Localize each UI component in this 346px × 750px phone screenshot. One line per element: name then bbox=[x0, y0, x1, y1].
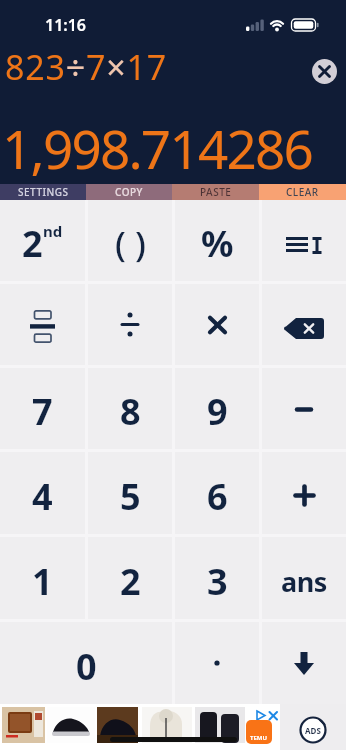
button[interactable]: ( ) bbox=[88, 200, 172, 281]
button[interactable] bbox=[262, 368, 346, 449]
staticText: 8 bbox=[120, 387, 141, 436]
button[interactable] bbox=[262, 622, 346, 704]
button[interactable]: 3 bbox=[175, 537, 259, 619]
button[interactable]: 4 bbox=[0, 452, 85, 534]
button[interactable]: PASTE bbox=[172, 184, 259, 200]
button[interactable] bbox=[262, 284, 346, 365]
button[interactable]: 9 bbox=[175, 368, 259, 449]
button[interactable]: 6 bbox=[175, 452, 259, 534]
staticText: PASTE bbox=[200, 185, 232, 199]
staticText: SETTINGS bbox=[18, 185, 69, 199]
button[interactable]: 2 bbox=[0, 200, 85, 281]
button[interactable] bbox=[175, 284, 259, 365]
button[interactable]: TEMU bbox=[246, 720, 272, 744]
staticText: ADS bbox=[305, 725, 321, 736]
staticText: 7 bbox=[32, 387, 53, 436]
button[interactable]: ans bbox=[262, 537, 346, 619]
button[interactable]: SETTINGS bbox=[0, 184, 86, 200]
button[interactable] bbox=[262, 452, 346, 534]
staticText: 0 bbox=[76, 642, 97, 691]
button[interactable]: 0 bbox=[0, 622, 172, 704]
staticText: ans bbox=[281, 563, 327, 600]
staticText: % bbox=[201, 219, 234, 268]
button[interactable]: % bbox=[175, 200, 259, 281]
button[interactable]: ADS bbox=[299, 716, 327, 744]
button[interactable]: 5 bbox=[88, 452, 172, 534]
button[interactable] bbox=[88, 284, 172, 365]
staticText: nd bbox=[43, 221, 63, 241]
staticText: 4 bbox=[32, 472, 53, 521]
staticText: 3 bbox=[207, 557, 228, 606]
button[interactable]: 1 bbox=[0, 537, 85, 619]
button[interactable]: CLEAR bbox=[259, 184, 346, 200]
staticText: 9 bbox=[207, 387, 228, 436]
button[interactable]: 8 bbox=[88, 368, 172, 449]
staticText: 2 bbox=[120, 557, 141, 606]
staticText: 823÷7×17 bbox=[5, 44, 167, 90]
button[interactable]: 7 bbox=[0, 368, 85, 449]
staticText: 6 bbox=[207, 472, 228, 521]
staticText: CLEAR bbox=[286, 185, 319, 199]
staticText: 1,998.714286 bbox=[2, 112, 312, 184]
staticText: 11:16 bbox=[45, 14, 87, 36]
staticText: 2 bbox=[22, 219, 43, 268]
staticText: COPY bbox=[115, 185, 143, 199]
button[interactable] bbox=[262, 200, 346, 281]
button[interactable]: 2 bbox=[88, 537, 172, 619]
staticText: ( ) bbox=[115, 220, 146, 268]
staticText: 5 bbox=[120, 472, 141, 521]
button[interactable] bbox=[312, 59, 337, 84]
staticText: 1 bbox=[32, 557, 53, 606]
button[interactable] bbox=[175, 622, 259, 704]
button[interactable]: COPY bbox=[86, 184, 172, 200]
button[interactable] bbox=[0, 284, 85, 365]
staticText: TEMU bbox=[250, 734, 268, 742]
